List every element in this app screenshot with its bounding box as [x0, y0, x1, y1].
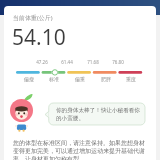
staticText: 标准 [43, 76, 65, 82]
staticText: 47.26 [31, 59, 53, 65]
staticText: 61.44 [56, 59, 78, 65]
button[interactable]: 你的身体太棒了！快让小秘看看你的小蛮腰。 [45, 103, 145, 125]
staticText: 肥胖 [95, 76, 117, 82]
staticText: 偏瘦 [18, 76, 40, 82]
staticText: 54.10 [12, 23, 66, 52]
staticText: 你的身体太棒了！快让小秘看看你的小蛮腰。 [56, 107, 140, 121]
staticText: 76.80 [107, 59, 129, 65]
staticText: 偏重 [69, 76, 91, 82]
staticText: 重度 [120, 76, 142, 82]
staticText: 71.68 [82, 59, 104, 65]
staticText: 您的体型在标准区间，请注意保持。如果您想身材变得更加完美，可以通过增加运动来提升… [13, 139, 146, 160]
staticText: 当前体重(公斤) [13, 14, 53, 22]
